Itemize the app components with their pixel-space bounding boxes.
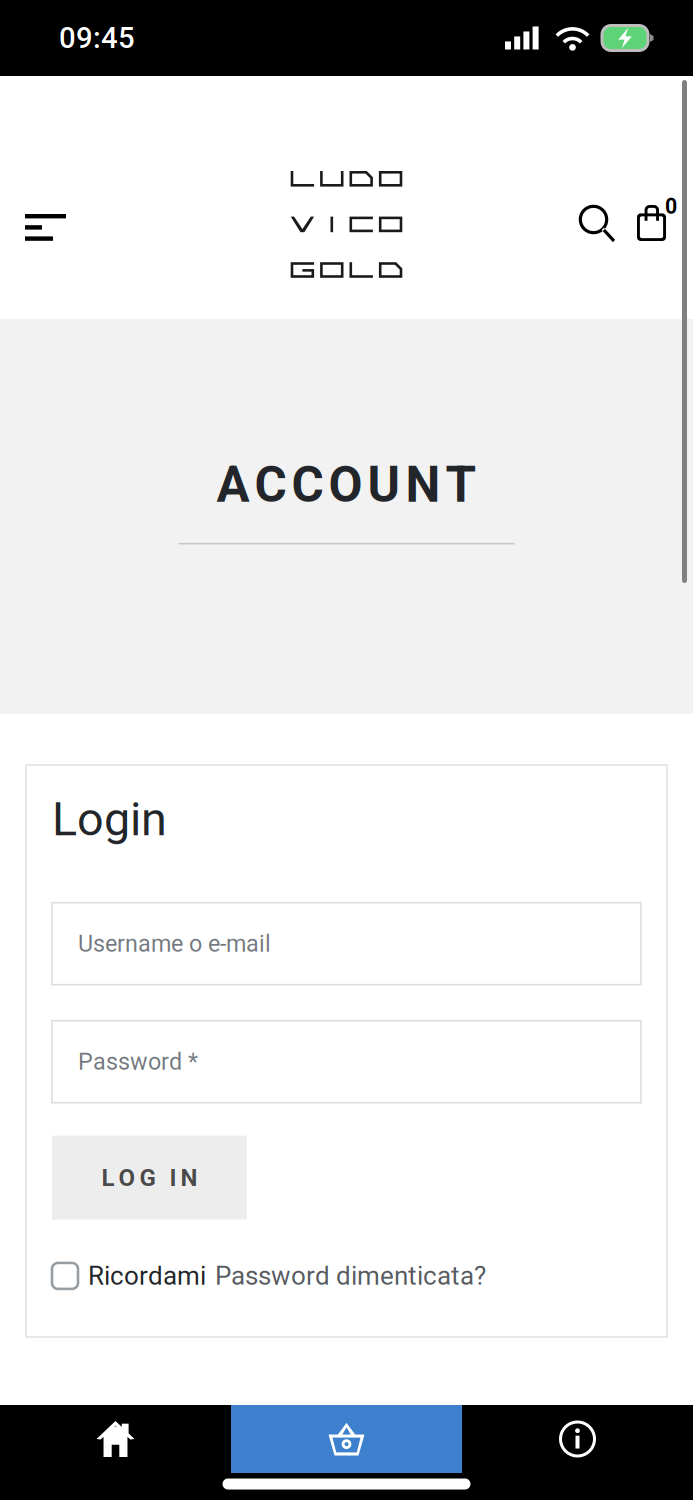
staticText: L O G I N [101, 1164, 197, 1192]
button[interactable]: Search [568, 193, 625, 253]
button[interactable]: L O G I N [52, 1136, 247, 1220]
button[interactable]: Cart [231, 1405, 462, 1473]
staticText: Password dimenticata? [215, 1261, 486, 1291]
staticText: 0 [665, 194, 677, 219]
staticText: Ricordami [88, 1261, 206, 1291]
staticText: A C C O U N T [216, 456, 476, 514]
staticText: Login [52, 792, 167, 847]
button[interactable]: Menu [11, 197, 80, 258]
button[interactable]: Cart, 0 items [625, 194, 693, 252]
button[interactable]: Ricordami [52, 1261, 206, 1291]
staticText: Username o e-mail [78, 930, 271, 957]
staticText: 09:45 [59, 21, 135, 55]
button[interactable]: Password dimenticata? [206, 1261, 486, 1291]
staticText: Password * [78, 1048, 198, 1075]
button[interactable]: Home [0, 1405, 231, 1473]
button[interactable]: Info [462, 1405, 693, 1473]
